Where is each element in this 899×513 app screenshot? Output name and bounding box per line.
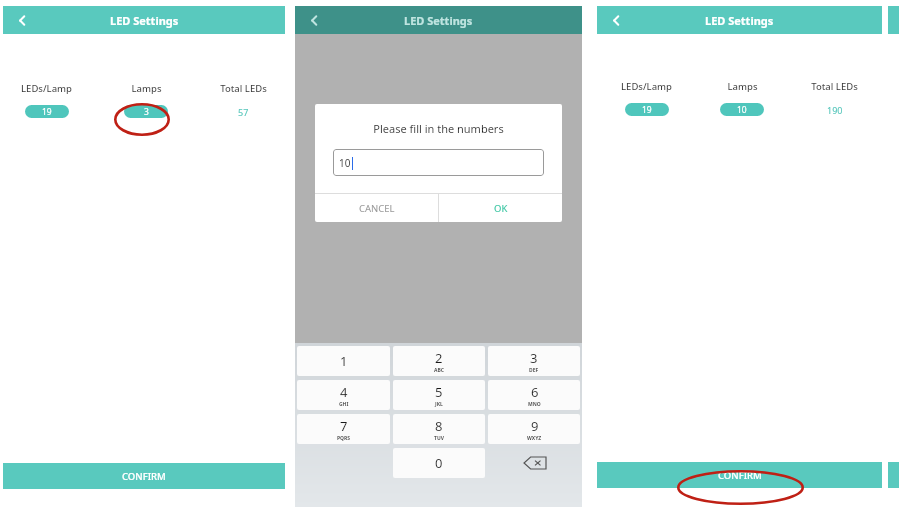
button[interactable]: 0 [393,448,485,478]
staticText: 2 [435,349,443,367]
staticText: MNO [528,401,541,408]
staticText: 3 [144,106,149,118]
button[interactable]: 6 [488,380,580,410]
staticText: 9 [531,417,539,435]
button[interactable]: 7 [297,414,390,444]
staticText: ABC [434,367,444,374]
button[interactable]: 10 [333,149,544,176]
staticText: 19 [642,104,652,116]
button[interactable]: CANCEL [315,194,438,222]
button[interactable]: 10 [720,103,764,116]
staticText: CONFIRM [718,469,762,482]
staticText: 190 [827,104,843,116]
button[interactable]: 2 [393,346,485,376]
button[interactable]: 5 [393,380,485,410]
staticText: PQRS [337,435,351,442]
staticText: 0 [435,454,443,472]
button[interactable]: 8 [393,414,485,444]
staticText: CONFIRM [122,470,166,483]
staticText: 1 [340,352,348,370]
staticText: LED Settings [110,13,179,28]
button[interactable]: OK [439,194,562,222]
staticText: 6 [531,383,539,401]
staticText: Please fill in the numbers [315,121,562,136]
button[interactable]: 3 [124,105,168,118]
staticText: 3 [530,349,538,367]
button[interactable]: CONFIRM [3,463,285,489]
staticText: 4 [340,383,348,401]
staticText: 57 [238,106,249,118]
button[interactable]: CONFIRM [597,462,882,488]
staticText: Total LEDs [220,82,267,95]
staticText: 10 [737,104,747,116]
button[interactable]: 9 [488,414,580,444]
staticText: GHI [339,401,349,408]
button[interactable]: 4 [297,380,390,410]
staticText: CANCEL [359,202,395,215]
button[interactable]: Back [605,9,627,31]
staticText: LEDs/Lamp [621,80,672,93]
staticText: DEF [529,367,539,374]
button[interactable]: Backspace [490,448,579,478]
staticText: 7 [340,417,348,435]
button[interactable]: Back [303,9,325,31]
button[interactable]: Back [11,9,33,31]
staticText: TUV [434,435,444,442]
staticText: Total LEDs [811,80,858,93]
staticText: 19 [42,106,52,118]
staticText: Lamps [727,80,758,93]
staticText: 10 [339,156,351,170]
staticText: LEDs/Lamp [21,82,72,95]
staticText: JKL [435,401,443,408]
staticText: OK [494,202,508,215]
staticText: WXYZ [527,435,542,442]
button[interactable]: 19 [625,103,669,116]
staticText: LED Settings [705,13,774,28]
button[interactable]: 19 [25,105,69,118]
staticText: Lamps [131,82,162,95]
staticText: LED Settings [404,13,473,28]
staticText: 8 [435,417,443,435]
button[interactable]: 3 [488,346,580,376]
button[interactable]: 1 [297,346,390,376]
staticText: 5 [435,383,443,401]
